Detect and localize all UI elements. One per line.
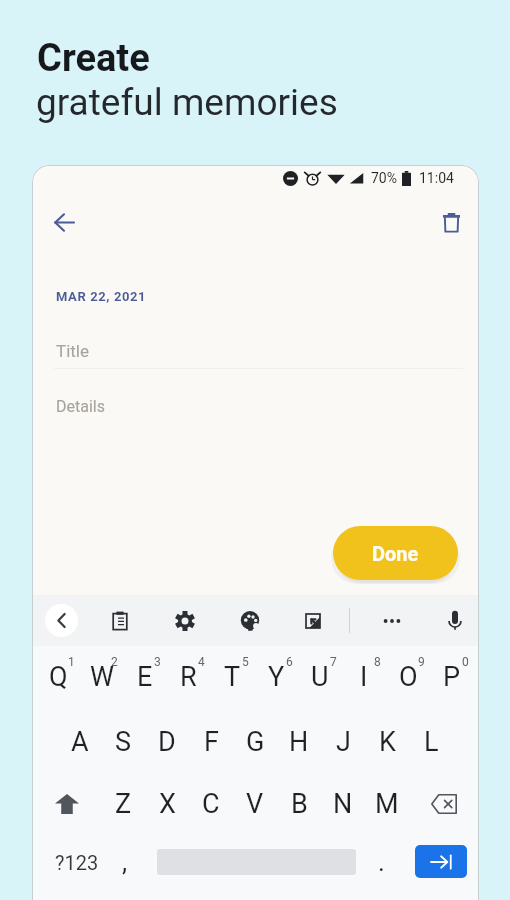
button[interactable]: Back: [44, 202, 84, 242]
button[interactable]: F: [189, 722, 233, 762]
staticText: U: [311, 661, 329, 693]
staticText: H: [289, 726, 309, 758]
button[interactable]: Y: [254, 657, 298, 697]
staticText: 70%: [371, 170, 397, 186]
staticText: .: [378, 847, 385, 877]
staticText: 3: [154, 655, 161, 669]
button[interactable]: X: [145, 782, 189, 826]
button[interactable]: T: [210, 657, 254, 697]
button[interactable]: O: [386, 657, 430, 697]
staticText: I: [360, 661, 368, 693]
staticText: Details: [56, 397, 105, 416]
button[interactable]: Theme: [235, 606, 264, 635]
staticText: M: [375, 788, 399, 820]
button[interactable]: J: [321, 722, 365, 762]
button[interactable]: Backspace: [409, 782, 479, 826]
staticText: N: [333, 788, 353, 820]
button[interactable]: K: [365, 722, 409, 762]
staticText: 8: [374, 655, 381, 669]
staticText: V: [246, 788, 264, 820]
button[interactable]: More options: [377, 606, 406, 635]
staticText: D: [158, 726, 176, 758]
staticText: J: [336, 726, 351, 758]
button[interactable]: Done: [333, 526, 458, 580]
staticText: 1: [68, 655, 75, 669]
button[interactable]: Previous: [45, 604, 78, 637]
staticText: 7: [330, 655, 337, 669]
staticText: Title: [56, 341, 89, 361]
staticText: O: [399, 661, 418, 693]
staticText: T: [224, 661, 241, 693]
staticText: 5: [242, 655, 249, 669]
button[interactable]: Clipboard: [105, 606, 134, 635]
button[interactable]: ,: [108, 842, 142, 882]
staticText: grateful memories: [36, 81, 338, 124]
staticText: Done: [372, 542, 419, 565]
staticText: ?123: [55, 851, 99, 874]
staticText: A: [71, 726, 89, 758]
staticText: ,: [122, 847, 128, 877]
staticText: G: [246, 726, 265, 758]
button[interactable]: Resize keyboard: [298, 606, 327, 635]
staticText: Y: [268, 661, 285, 693]
staticText: Z: [115, 788, 132, 820]
button[interactable]: V: [233, 782, 277, 826]
staticText: MAR 22, 2021: [56, 289, 147, 304]
staticText: X: [159, 788, 176, 820]
staticText: L: [424, 726, 439, 758]
button[interactable]: Z: [101, 782, 145, 826]
button[interactable]: C: [189, 782, 233, 826]
staticText: P: [443, 661, 461, 693]
button[interactable]: Delete: [431, 203, 471, 243]
staticText: 9: [418, 655, 425, 669]
staticText: C: [202, 788, 220, 820]
button[interactable]: S: [101, 722, 145, 762]
staticText: Q: [49, 661, 68, 693]
staticText: 6: [286, 655, 293, 669]
button[interactable]: Q: [37, 657, 80, 697]
button[interactable]: N: [321, 782, 365, 826]
button[interactable]: G: [233, 722, 277, 762]
button[interactable]: Enter: [415, 845, 467, 878]
staticText: 11:04: [419, 170, 454, 186]
button[interactable]: H: [277, 722, 321, 762]
button[interactable]: .: [364, 842, 398, 882]
staticText: F: [204, 726, 219, 758]
button[interactable]: D: [145, 722, 189, 762]
staticText: K: [379, 726, 396, 758]
staticText: E: [137, 661, 153, 693]
button[interactable]: ?123: [48, 842, 106, 882]
button[interactable]: L: [409, 722, 453, 762]
staticText: 4: [198, 655, 205, 669]
staticText: 2: [111, 655, 118, 669]
button[interactable]: B: [277, 782, 321, 826]
staticText: R: [180, 661, 197, 693]
button[interactable]: Voice input: [440, 606, 469, 635]
button[interactable]: M: [365, 782, 409, 826]
staticText: W: [90, 661, 114, 693]
button[interactable]: E: [123, 657, 166, 697]
button[interactable]: A: [58, 722, 101, 762]
staticText: Create: [37, 36, 150, 81]
button[interactable]: R: [166, 657, 210, 697]
button[interactable]: P: [430, 657, 474, 697]
button[interactable]: W: [80, 657, 123, 697]
staticText: 0: [462, 655, 469, 669]
button[interactable]: I: [342, 657, 386, 697]
staticText: S: [115, 726, 132, 758]
staticText: B: [291, 788, 308, 820]
button[interactable]: U: [298, 657, 342, 697]
button[interactable]: Shift: [32, 782, 101, 826]
button[interactable]: Settings: [170, 606, 199, 635]
